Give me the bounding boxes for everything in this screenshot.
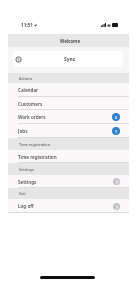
staticText: Settings (19, 167, 34, 172)
staticText: Welcome (60, 38, 80, 44)
button[interactable]: Jobs (8, 124, 129, 138)
button[interactable]: Work orders (8, 110, 129, 124)
button[interactable]: Calendar (8, 83, 129, 97)
staticText: Customers (18, 101, 43, 107)
staticText: Time registration (18, 154, 57, 160)
staticText: Settings (18, 179, 37, 185)
staticText: Exit (19, 191, 26, 196)
button[interactable]: Time registration (8, 150, 129, 163)
button[interactable]: Customers (8, 97, 129, 110)
staticText: Work orders (18, 114, 46, 120)
button[interactable]: Log off (8, 199, 129, 213)
staticText: 3 (115, 115, 118, 120)
staticText: Time registration (19, 142, 50, 147)
staticText: Actions (19, 76, 33, 81)
staticText: 11:51 (21, 22, 33, 28)
button[interactable]: Sync (13, 51, 123, 67)
staticText: Calendar (18, 87, 39, 93)
staticText: 1 (115, 129, 118, 134)
staticText: Log off (18, 203, 34, 209)
staticText: Sync (64, 56, 76, 63)
other: Sync settings (14, 55, 23, 64)
staticText: Jobs (18, 128, 28, 134)
button[interactable]: Settings (8, 175, 129, 188)
